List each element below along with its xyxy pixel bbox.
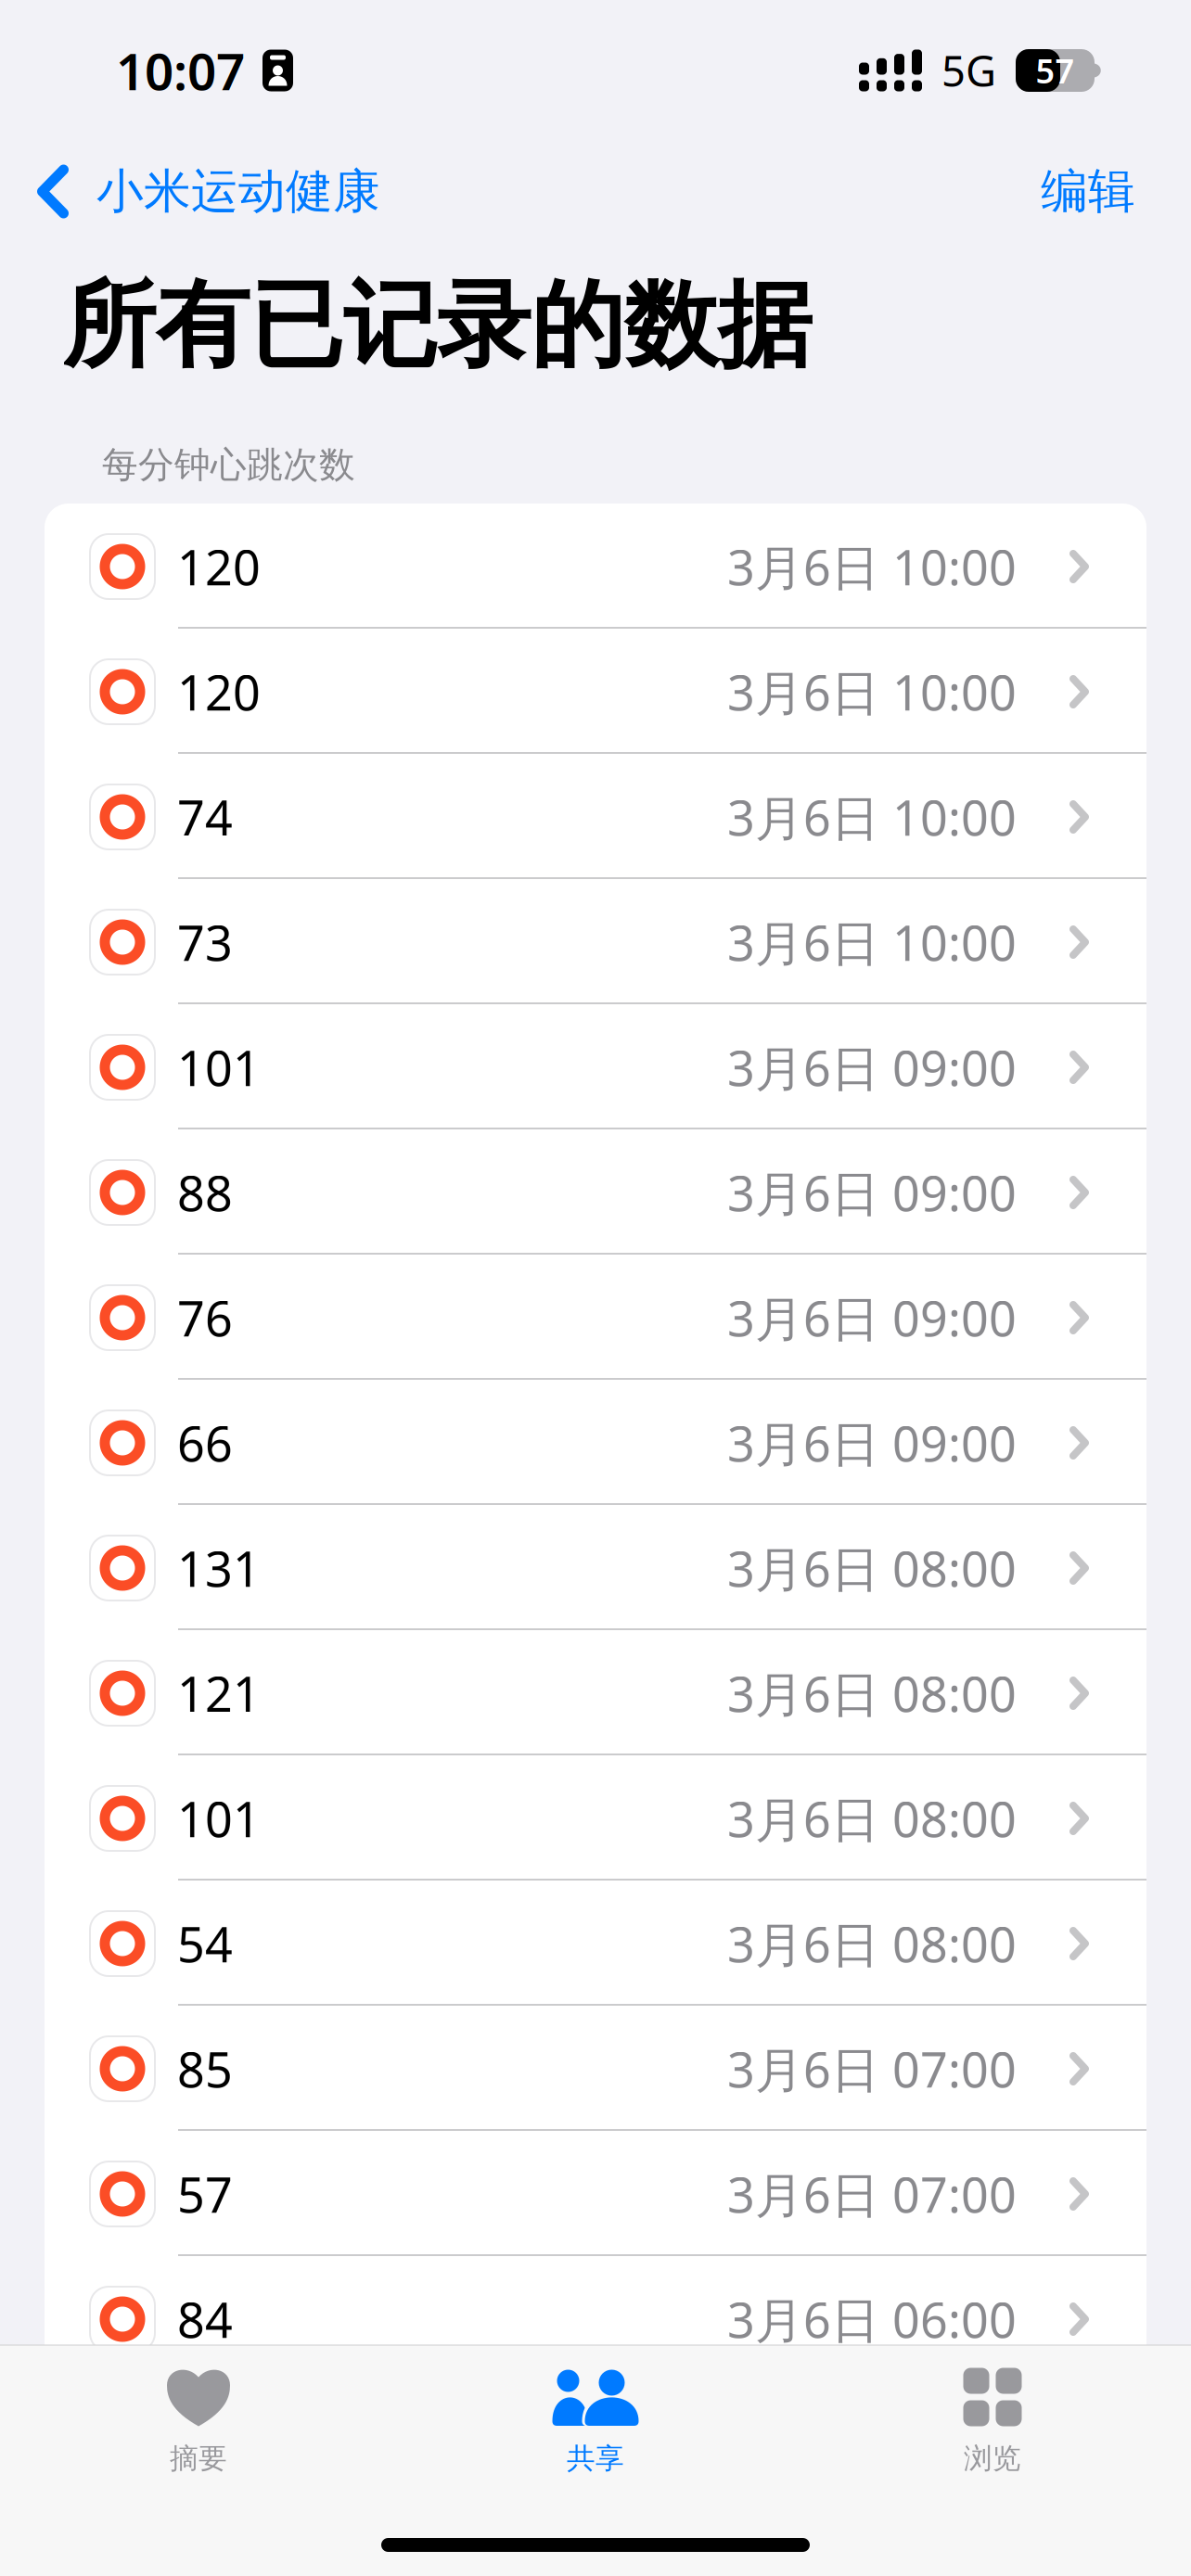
staticText: 10:07: [116, 37, 245, 104]
staticText: 3月6日 09:00: [727, 1286, 1017, 1350]
staticText: 浏览: [964, 2441, 1021, 2476]
staticText: 120: [177, 535, 261, 599]
staticText: 3月6日 09:00: [727, 1411, 1017, 1475]
button[interactable]: 共享: [397, 2346, 794, 2576]
button[interactable]: 120: [45, 504, 1146, 627]
staticText: 57: [1036, 48, 1075, 93]
staticText: 3月6日 07:00: [727, 2037, 1017, 2101]
staticText: 3月6日 09:00: [727, 1035, 1017, 1099]
staticText: 121: [177, 1661, 261, 1725]
button[interactable]: 88: [45, 1129, 1146, 1253]
staticText: 54: [177, 1912, 233, 1976]
staticText: 85: [177, 2037, 233, 2101]
staticText: 摘要: [170, 2441, 227, 2476]
staticText: 3月6日 10:00: [727, 535, 1017, 599]
button[interactable]: 101: [45, 1755, 1146, 1879]
button[interactable]: 84: [45, 2256, 1146, 2379]
button[interactable]: 121: [45, 1630, 1146, 1753]
staticText: 3月6日 10:00: [727, 660, 1017, 724]
button[interactable]: 131: [45, 1505, 1146, 1628]
staticText: 88: [177, 1160, 233, 1225]
staticText: 73: [177, 910, 233, 974]
staticText: 57: [177, 2162, 233, 2226]
button[interactable]: 74: [45, 754, 1146, 877]
staticText: 3月6日 08:00: [727, 1536, 1017, 1600]
button[interactable]: 浏览: [794, 2346, 1191, 2576]
staticText: 5G: [941, 43, 996, 98]
staticText: 101: [177, 1035, 261, 1099]
button[interactable]: 85: [45, 2006, 1146, 2129]
staticText: 编辑: [1041, 163, 1135, 220]
staticText: 共享: [567, 2441, 624, 2476]
staticText: 120: [177, 660, 261, 724]
staticText: 3月6日 08:00: [727, 1786, 1017, 1850]
staticText: 3月6日 10:00: [727, 910, 1017, 974]
staticText: 3月6日 06:00: [727, 2287, 1017, 2351]
staticText: 3月6日 08:00: [727, 1912, 1017, 1976]
button[interactable]: 76: [45, 1255, 1146, 1378]
staticText: 74: [177, 785, 233, 849]
button[interactable]: 120: [45, 629, 1146, 752]
staticText: 小米运动健康: [96, 163, 380, 220]
staticText: 3月6日 09:00: [727, 1160, 1017, 1225]
staticText: 3月6日 07:00: [727, 2162, 1017, 2226]
staticText: 所有已记录的数据: [62, 268, 812, 383]
staticText: 101: [177, 1786, 261, 1850]
button[interactable]: 摘要: [0, 2346, 397, 2576]
staticText: 131: [177, 1536, 261, 1600]
staticText: 84: [177, 2287, 233, 2351]
button[interactable]: 编辑: [1018, 131, 1191, 252]
staticText: 每分钟心跳次数: [102, 443, 355, 487]
button[interactable]: 73: [45, 879, 1146, 1002]
staticText: 3月6日 08:00: [727, 1661, 1017, 1725]
button[interactable]: 返回 小米运动健康: [0, 131, 403, 252]
staticText: 66: [177, 1411, 233, 1475]
button[interactable]: 54: [45, 1881, 1146, 2004]
staticText: 3月6日 10:00: [727, 785, 1017, 849]
staticText: 76: [177, 1286, 233, 1350]
button[interactable]: 101: [45, 1004, 1146, 1128]
button[interactable]: 57: [45, 2131, 1146, 2254]
button[interactable]: 66: [45, 1380, 1146, 1503]
